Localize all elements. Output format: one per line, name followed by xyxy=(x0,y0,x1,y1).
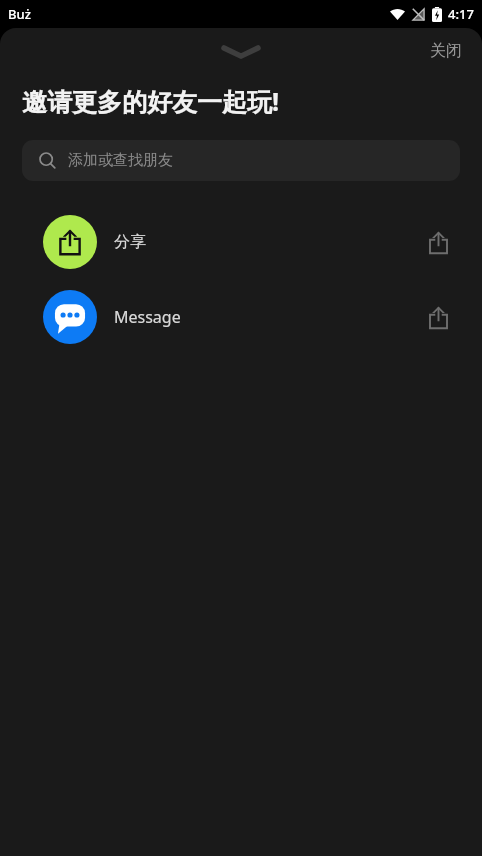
button[interactable]: Message xyxy=(0,290,482,344)
staticText: 4:17 xyxy=(448,5,474,23)
button[interactable]: 添加或查找朋友 xyxy=(22,140,460,181)
button[interactable]: Collapse xyxy=(213,36,269,66)
staticText: 邀请更多的好友一起玩! xyxy=(22,84,280,118)
button[interactable]: Share Message xyxy=(416,295,460,339)
staticText: Buż xyxy=(8,5,31,23)
button[interactable]: 关闭 xyxy=(410,33,482,69)
staticText: 添加或查找朋友 xyxy=(68,151,173,170)
staticText: 关闭 xyxy=(430,41,462,61)
button[interactable]: 分享 xyxy=(0,215,482,269)
button[interactable]: Share 分享 xyxy=(416,220,460,264)
staticText: 分享 xyxy=(114,232,416,252)
staticText: Message xyxy=(114,306,416,328)
